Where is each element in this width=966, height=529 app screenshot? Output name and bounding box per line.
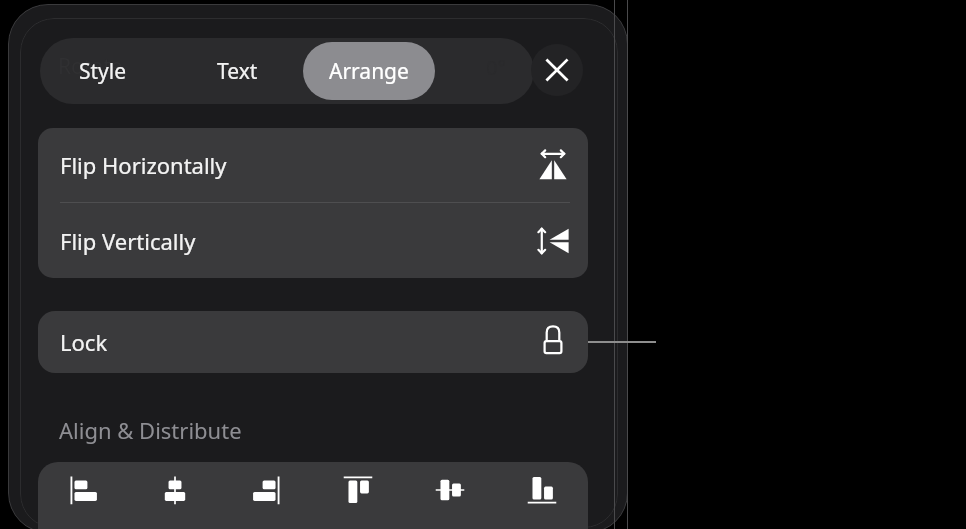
- button[interactable]: Style: [56, 42, 150, 100]
- staticText: Flip Vertically: [60, 226, 196, 256]
- button[interactable]: Lock: [38, 311, 588, 373]
- button[interactable]: Align: [129, 462, 220, 518]
- staticText: Align & Distribute: [59, 415, 242, 445]
- staticText: Lock: [60, 327, 108, 357]
- button[interactable]: Close: [531, 44, 583, 96]
- button[interactable]: Align: [38, 462, 129, 518]
- button[interactable]: Text: [190, 42, 284, 100]
- button[interactable]: Flip Vertically: [38, 203, 588, 278]
- button[interactable]: Flip Horizontally: [38, 128, 588, 202]
- staticText: Arrange: [329, 57, 409, 86]
- staticText: Text: [217, 57, 258, 86]
- other: Flip Vertically: [536, 224, 570, 258]
- button[interactable]: Align: [312, 462, 404, 518]
- staticText: Style: [79, 57, 127, 86]
- staticText: Rotate: [58, 52, 123, 81]
- button[interactable]: Arrange: [303, 42, 435, 100]
- other: Lock: [538, 327, 568, 357]
- staticText: Flip Horizontally: [60, 150, 227, 180]
- button[interactable]: Align: [404, 462, 496, 518]
- other: Flip Horizontally: [536, 148, 570, 182]
- button[interactable]: Align: [220, 462, 312, 518]
- button[interactable]: Align: [496, 462, 588, 518]
